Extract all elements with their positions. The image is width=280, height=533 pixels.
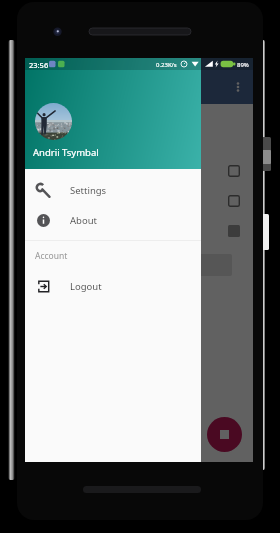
button[interactable]: Show notification — [37, 186, 253, 216]
staticText: Settings — [70, 184, 107, 197]
button[interactable]: More options — [226, 75, 250, 99]
button[interactable]: Settings — [25, 175, 201, 205]
button[interactable]: INSTALL BINARIES AND ENABLE — [35, 254, 232, 276]
button[interactable]: Logout — [25, 271, 201, 301]
button[interactable]: Stop service — [207, 417, 242, 452]
button[interactable]: Start on boot — [37, 156, 253, 186]
staticText: Logout — [70, 280, 102, 293]
staticText: 23:56 — [29, 60, 49, 70]
staticText: Run in background — [37, 226, 109, 237]
staticText: Account — [35, 250, 68, 262]
button[interactable]: About — [25, 205, 201, 235]
staticText: 89% — [237, 61, 249, 69]
staticText: 0.23K/s — [156, 61, 177, 69]
staticText: Start on boot — [37, 166, 87, 177]
staticText: The service is currently enabled — [39, 135, 173, 147]
staticText: Show notification — [37, 196, 102, 207]
staticText: About — [70, 214, 97, 227]
staticText: Andrii Tsymbal — [33, 146, 99, 159]
button[interactable]: Run in background — [37, 216, 253, 246]
